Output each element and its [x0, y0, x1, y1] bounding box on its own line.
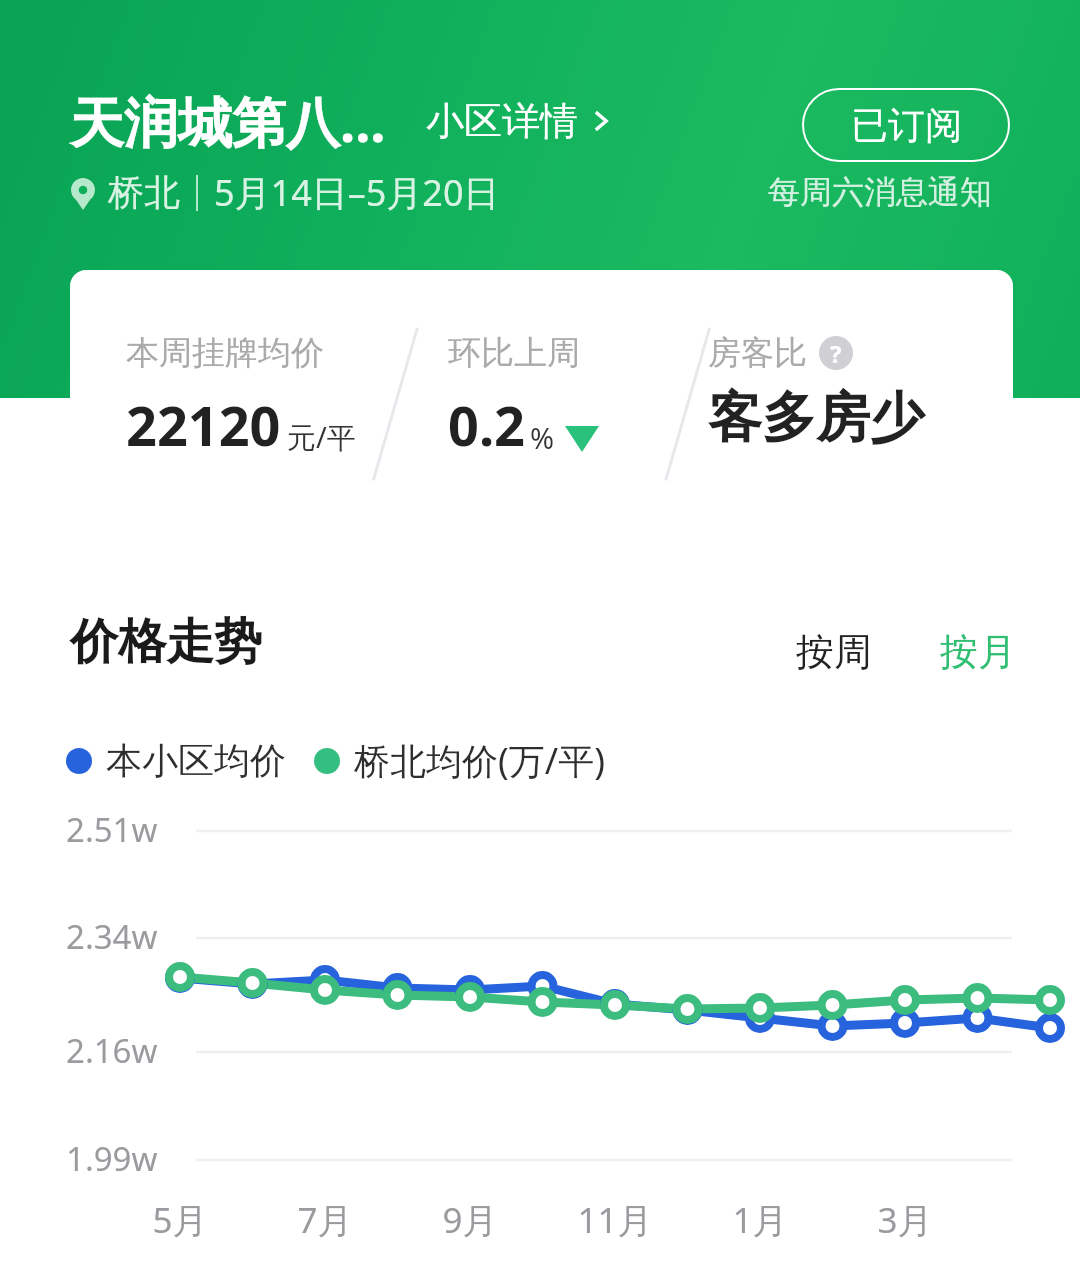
- staticText: 1月: [727, 1196, 793, 1244]
- staticText: 7月: [292, 1196, 358, 1244]
- staticText: 小区详情: [426, 97, 578, 145]
- staticText: 5月: [147, 1196, 213, 1244]
- staticText: 桥北: [108, 170, 180, 215]
- staticText: 按月: [940, 628, 1016, 676]
- staticText: 元/平: [287, 417, 356, 457]
- button[interactable]: 帮助: [819, 336, 853, 370]
- button[interactable]: 按月: [934, 622, 1022, 682]
- staticText: 房客比: [708, 332, 807, 374]
- staticText: 桥北均价(万/平): [354, 736, 605, 785]
- staticText: 按周: [796, 628, 872, 676]
- staticText: ?: [830, 337, 842, 370]
- staticText: 已订阅: [851, 102, 962, 149]
- staticText: 0.2: [448, 388, 525, 462]
- staticText: 客多房少: [708, 384, 924, 452]
- staticText: 本周挂牌均价: [126, 332, 324, 374]
- staticText: 5月14日–5月20日: [214, 168, 500, 217]
- staticText: 11月: [572, 1196, 658, 1244]
- staticText: 天润城第八...: [70, 84, 386, 158]
- staticText: 价格走势: [70, 612, 262, 672]
- staticText: 2.16w: [66, 1028, 158, 1073]
- staticText: 3月: [872, 1196, 938, 1244]
- staticText: 2.51w: [66, 807, 158, 852]
- button[interactable]: 本周挂牌均价: [70, 270, 1013, 533]
- button[interactable]: 已订阅: [802, 88, 1010, 162]
- staticText: 环比上周: [448, 332, 580, 374]
- staticText: 9月: [437, 1196, 503, 1244]
- staticText: 每周六消息通知: [768, 172, 992, 212]
- staticText: 22120: [126, 388, 281, 462]
- button[interactable]: 按周: [790, 622, 878, 682]
- button[interactable]: 小区详情: [422, 89, 618, 153]
- staticText: 本小区均价: [106, 738, 286, 783]
- staticText: 1.99w: [66, 1136, 158, 1181]
- staticText: 2.34w: [66, 914, 158, 959]
- staticText: %: [530, 418, 555, 457]
